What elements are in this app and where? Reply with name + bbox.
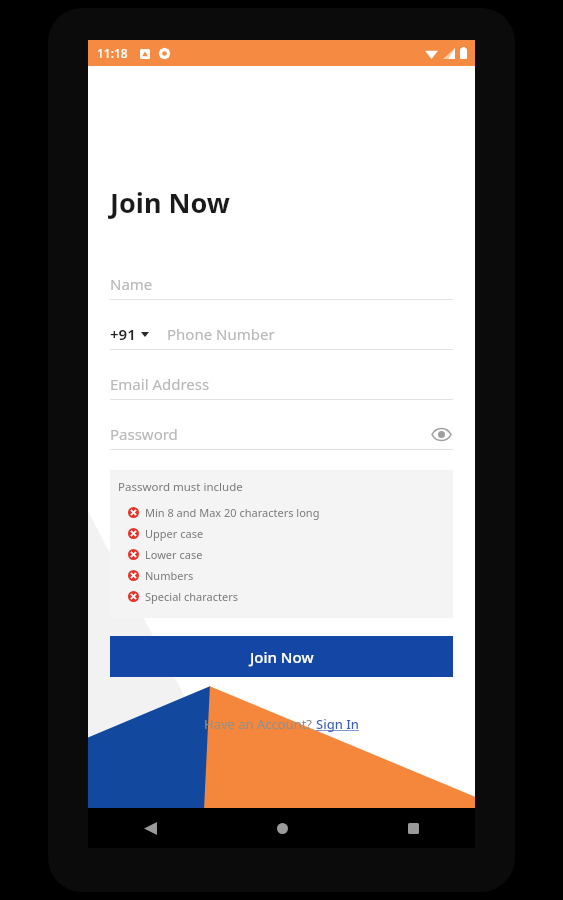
button[interactable]: Join Now xyxy=(110,636,453,677)
staticText: Join Now xyxy=(110,184,230,221)
button[interactable]: Home xyxy=(266,812,298,844)
staticText: Upper case xyxy=(145,526,204,541)
button[interactable]: Email Address xyxy=(110,369,453,400)
staticText: Password must include xyxy=(118,479,243,495)
button[interactable]: Back xyxy=(134,812,166,844)
staticText: Have an Account? xyxy=(204,715,316,733)
staticText: +91 xyxy=(110,324,136,344)
staticText: Password xyxy=(110,424,178,444)
staticText: 11:18 xyxy=(97,45,128,61)
staticText: Lower case xyxy=(145,547,203,562)
staticText: Min 8 and Max 20 characters long xyxy=(145,505,320,520)
button[interactable]: Recents xyxy=(397,812,429,844)
button[interactable]: Name xyxy=(110,269,453,300)
staticText: Name xyxy=(110,274,153,294)
button[interactable]: +91 xyxy=(110,319,453,350)
staticText: Email Address xyxy=(110,374,210,394)
button[interactable]: Password xyxy=(110,419,453,450)
staticText: Sign In xyxy=(316,715,360,733)
button[interactable]: +91 xyxy=(110,324,153,344)
button[interactable]: Show password xyxy=(429,422,453,446)
button[interactable]: Sign In xyxy=(316,715,360,733)
staticText: Join Now xyxy=(250,647,314,667)
staticText: Phone Number xyxy=(167,324,275,344)
staticText: Special characters xyxy=(145,589,239,604)
staticText: Numbers xyxy=(145,568,194,583)
